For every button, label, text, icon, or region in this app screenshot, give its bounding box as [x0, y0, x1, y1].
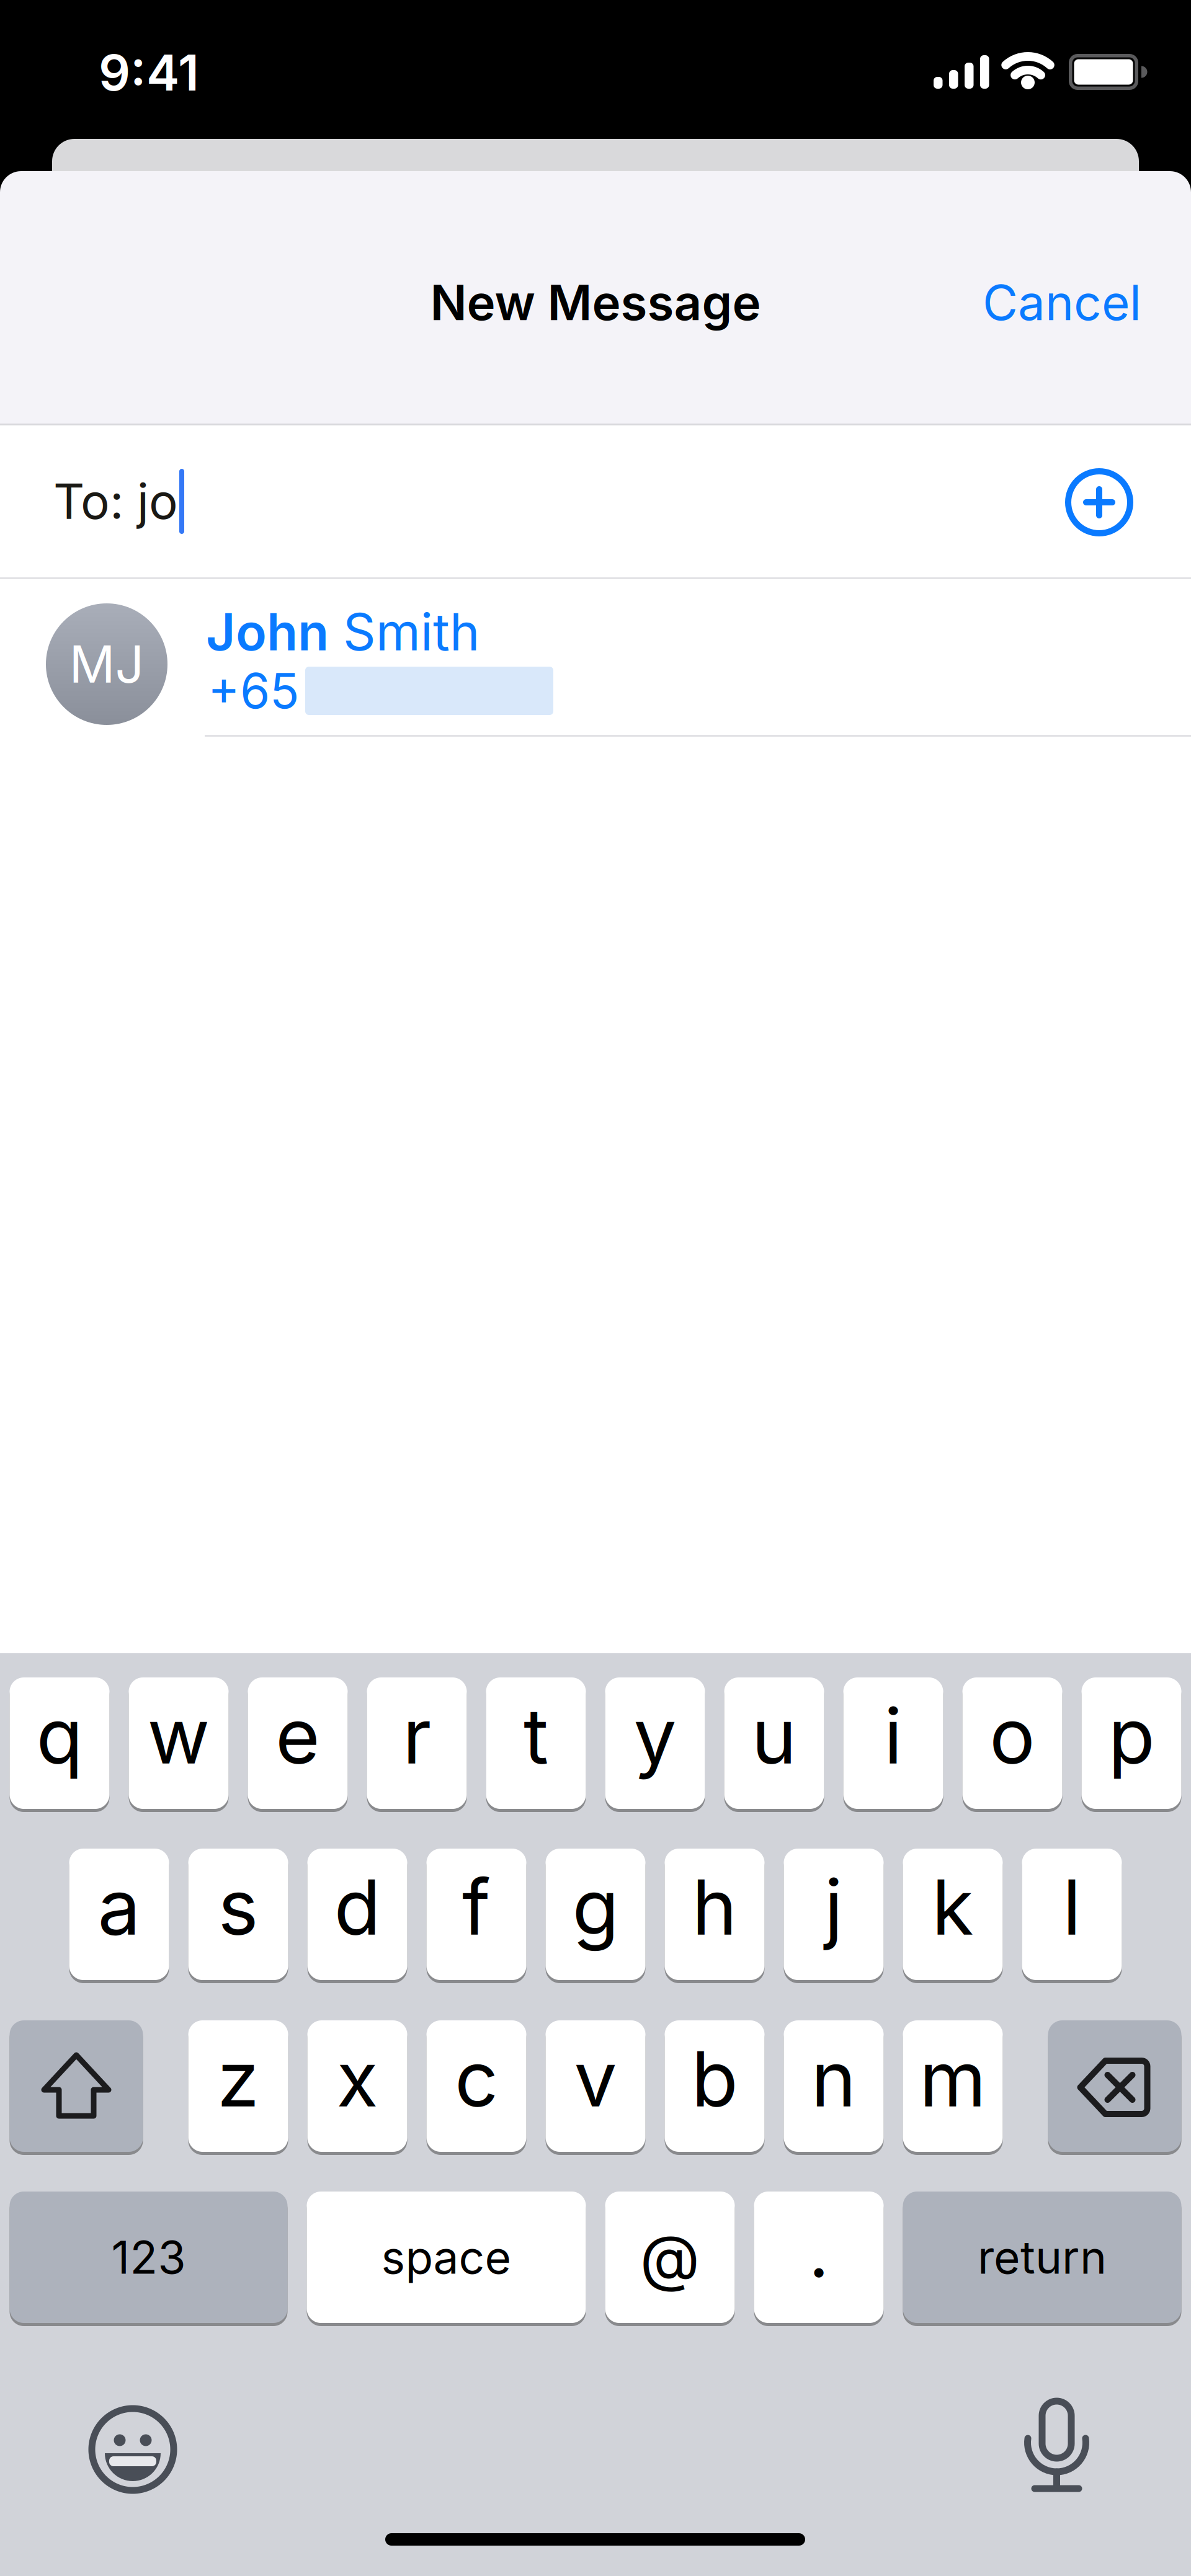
button[interactable]: To: jo — [53, 425, 488, 577]
staticText: d — [334, 1861, 381, 1953]
staticText: @ — [640, 2220, 700, 2295]
button[interactable]: a — [69, 1849, 169, 1980]
staticText: b — [691, 2033, 738, 2125]
staticText: John Smith — [206, 602, 480, 662]
button[interactable]: k — [903, 1849, 1003, 1980]
button[interactable]: i — [843, 1677, 943, 1809]
staticText: q — [36, 1690, 83, 1782]
button[interactable]: Shift — [10, 2020, 143, 2152]
staticText: m — [919, 2033, 986, 2125]
staticText: r — [403, 1690, 431, 1782]
button[interactable]: Cancel — [868, 269, 1141, 337]
button[interactable]: o — [962, 1677, 1062, 1809]
staticText: p — [1108, 1690, 1155, 1782]
button[interactable]: 123 — [10, 2192, 288, 2323]
staticText: +65 — [208, 662, 299, 720]
button[interactable]: g — [546, 1849, 645, 1980]
staticText: New Message — [430, 273, 761, 332]
staticText: MJ — [69, 633, 144, 695]
staticText: s — [218, 1861, 258, 1953]
button[interactable]: Dictate — [1007, 2394, 1106, 2493]
button[interactable]: Delete — [1048, 2020, 1181, 2152]
staticText: l — [1063, 1861, 1081, 1953]
staticText: k — [932, 1861, 974, 1953]
staticText: t — [524, 1690, 548, 1782]
staticText: space — [381, 2230, 511, 2285]
staticText: o — [989, 1690, 1035, 1782]
button[interactable]: l — [1022, 1849, 1122, 1980]
staticText: 9:41 — [99, 43, 199, 103]
staticText: z — [217, 2033, 259, 2125]
staticText: j — [824, 1861, 843, 1953]
button[interactable]: m — [903, 2020, 1003, 2152]
staticText: c — [455, 2033, 498, 2125]
button[interactable]: u — [724, 1677, 824, 1809]
button[interactable]: @ — [605, 2192, 735, 2323]
staticText: To: jo — [53, 472, 178, 531]
button[interactable]: w — [129, 1677, 229, 1809]
staticText: v — [574, 2033, 617, 2125]
button[interactable]: MJ — [0, 578, 1191, 735]
button[interactable]: h — [665, 1849, 765, 1980]
staticText: n — [811, 2033, 856, 2125]
staticText: h — [692, 1861, 737, 1953]
staticText: g — [572, 1861, 619, 1953]
button[interactable]: Add Contact — [1059, 462, 1140, 543]
staticText: u — [752, 1690, 797, 1782]
button[interactable]: space — [307, 2192, 586, 2323]
button[interactable]: j — [784, 1849, 884, 1980]
button[interactable]: s — [188, 1849, 288, 1980]
staticText: 123 — [111, 2230, 186, 2285]
staticText: f — [462, 1861, 491, 1953]
button[interactable]: e — [248, 1677, 348, 1809]
button[interactable]: p — [1082, 1677, 1181, 1809]
button[interactable]: t — [486, 1677, 586, 1809]
staticText: a — [98, 1861, 141, 1953]
staticText: w — [147, 1690, 210, 1782]
button[interactable]: v — [546, 2020, 645, 2152]
button[interactable]: f — [426, 1849, 526, 1980]
button[interactable]: x — [307, 2020, 407, 2152]
button[interactable]: d — [307, 1849, 407, 1980]
staticText: . — [809, 2208, 829, 2294]
staticText: Cancel — [983, 273, 1141, 332]
button[interactable]: y — [605, 1677, 705, 1809]
staticText: e — [275, 1690, 320, 1782]
button[interactable]: r — [367, 1677, 467, 1809]
staticText: y — [634, 1690, 676, 1782]
button[interactable]: Emoji — [83, 2400, 182, 2499]
staticText: x — [337, 2033, 378, 2125]
button[interactable]: z — [188, 2020, 288, 2152]
button[interactable]: q — [10, 1677, 109, 1809]
button[interactable]: . — [754, 2192, 884, 2323]
staticText: i — [884, 1690, 903, 1782]
button[interactable]: c — [426, 2020, 526, 2152]
staticText: return — [978, 2230, 1107, 2285]
button[interactable]: b — [665, 2020, 765, 2152]
button[interactable]: return — [903, 2192, 1181, 2323]
button[interactable]: n — [784, 2020, 884, 2152]
